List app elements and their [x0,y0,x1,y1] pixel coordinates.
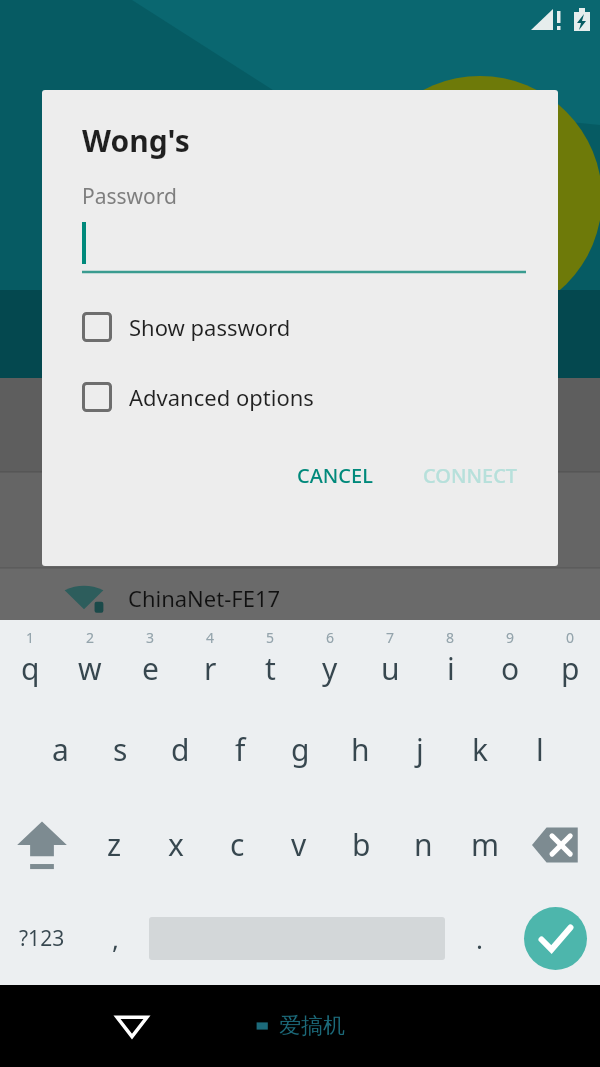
staticText: ?123 [19,924,65,953]
staticText: 8 [446,628,455,647]
staticText: 0 [566,628,575,647]
staticText: w [78,648,102,689]
staticText: 2 [86,628,95,647]
button[interactable]: . [448,892,510,985]
staticText: l [536,729,544,770]
staticText: . [476,921,483,956]
button[interactable]: CONNECT [409,452,532,499]
button[interactable]: b [330,797,392,892]
staticText: Password [82,182,177,211]
staticText: k [472,729,489,770]
button[interactable]: k [450,702,510,797]
staticText: Wong's [82,120,190,161]
staticText: p [561,648,580,689]
staticText: j [416,729,424,770]
staticText: z [107,824,122,865]
staticText: i [447,648,455,689]
staticText: d [171,729,190,770]
button[interactable]: g [270,702,330,797]
button[interactable]: c [206,797,268,892]
button[interactable]: ?123 [0,892,84,985]
button[interactable]: 5 [240,620,300,702]
staticText: c [230,824,245,865]
staticText: 5 [266,628,275,647]
button[interactable]: 7 [360,620,420,702]
staticText: t [265,648,276,689]
button[interactable]: m [454,797,516,892]
staticText: v [291,824,307,865]
button[interactable]: j [390,702,450,797]
staticText: CANCEL [297,462,373,489]
staticText: ChinaNet-FE17 [128,583,281,613]
staticText: , [112,921,119,956]
button[interactable]: n [392,797,454,892]
staticText: e [142,648,159,689]
staticText: q [21,648,40,689]
staticText: r [204,648,217,689]
button[interactable]: 0 [540,620,600,702]
button[interactable]: s [90,702,150,797]
staticText: y [322,648,338,689]
button[interactable]: 1 [0,620,60,702]
staticText: s [113,729,128,770]
staticText: 6 [326,628,335,647]
staticText: CONNECT [423,462,518,489]
staticText: m [471,824,500,865]
staticText: 3 [146,628,155,647]
staticText: 爱搞机 [279,1012,345,1040]
button[interactable]: 8 [420,620,480,702]
button[interactable]: z [84,797,145,892]
button[interactable]: CANCEL [283,452,387,499]
staticText: Show password [129,312,291,342]
staticText: a [52,729,69,770]
staticText: o [501,648,520,689]
button[interactable]: Advanced options [42,378,558,416]
button[interactable]: 6 [300,620,360,702]
button[interactable]: Shift [0,797,84,892]
button[interactable]: d [150,702,210,797]
staticText: x [168,824,184,865]
button[interactable]: Show password [42,308,558,346]
staticText: f [235,729,246,770]
button[interactable]: 3 [120,620,180,702]
button[interactable]: f [210,702,270,797]
button[interactable]: l [510,702,570,797]
button[interactable]: 9 [480,620,540,702]
staticText: 4 [206,628,215,647]
staticText: b [352,824,371,865]
button[interactable]: Enter [510,892,600,985]
button[interactable]: v [268,797,330,892]
staticText: n [414,824,433,865]
staticText: 9 [506,628,515,647]
button[interactable]: Hide keyboard [110,1004,154,1048]
button[interactable]: x [145,797,206,892]
staticText: h [351,729,370,770]
button[interactable]: h [330,702,390,797]
staticText: g [291,729,310,770]
button[interactable]: a [30,702,90,797]
staticText: 1 [26,628,35,647]
button[interactable]: Backspace [516,797,600,892]
staticText: 7 [386,628,395,647]
staticText: Advanced options [129,382,314,412]
button[interactable]: 2 [60,620,120,702]
button[interactable]: Password field [82,222,526,274]
button[interactable]: , [84,892,146,985]
button[interactable]: 4 [180,620,240,702]
staticText: u [381,648,400,689]
